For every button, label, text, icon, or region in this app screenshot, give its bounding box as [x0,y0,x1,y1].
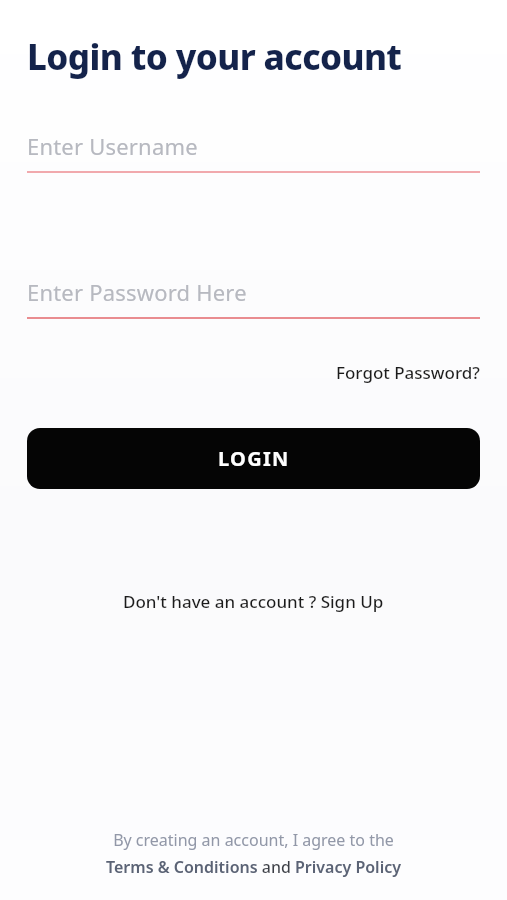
staticText: By creating an account, I agree to the [113,829,394,851]
button[interactable]: LOGIN [27,428,480,489]
button[interactable]: Don't have an account ? Sign Up [123,590,384,613]
button[interactable]: Enter Username [27,131,480,173]
staticText: Terms & Conditions and Privacy Policy [106,856,401,878]
staticText: Forgot Password? [336,361,480,384]
staticText: Enter Username [27,131,198,161]
staticText: Login to your account [27,33,402,81]
button[interactable]: Enter Password Here [27,277,480,319]
staticText: Enter Password Here [27,277,247,307]
staticText: Don't have an account ? Sign Up [123,590,384,613]
button[interactable]: Terms & Conditions and Privacy Policy [106,856,401,878]
button[interactable]: Forgot Password? [336,361,480,384]
staticText: LOGIN [218,445,290,472]
